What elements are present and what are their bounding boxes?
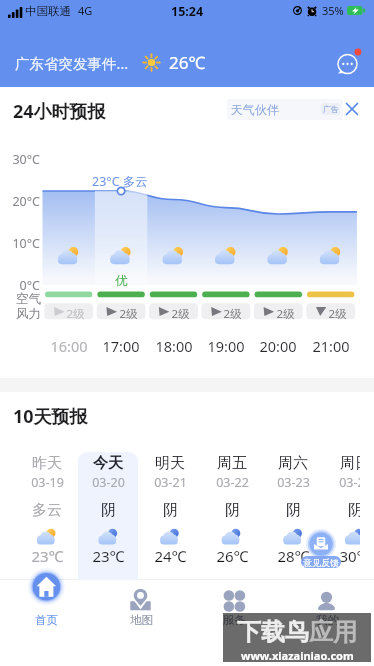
staticText: 23℃: [31, 546, 64, 566]
staticText: 今天: [93, 454, 123, 473]
staticText: 多云: [32, 501, 62, 520]
staticText: 19:00: [207, 336, 245, 356]
staticText: 阴: [286, 501, 301, 520]
staticText: 28℃: [277, 546, 310, 566]
button[interactable]: [201, 452, 263, 580]
staticText: 2级: [119, 306, 138, 322]
staticText: 18:00: [155, 336, 193, 356]
staticText: 地图: [130, 613, 153, 627]
button[interactable]: 24小时预报: [13, 99, 106, 124]
staticText: www.xiazainiao.com: [241, 648, 354, 662]
button[interactable]: [78, 452, 140, 580]
staticText: 2级: [328, 306, 347, 322]
staticText: 应用: [309, 617, 357, 647]
staticText: 16:00: [50, 336, 88, 356]
staticText: 24小时预报: [13, 99, 106, 124]
staticText: 明天: [155, 454, 185, 473]
staticText: 30°C: [12, 151, 40, 168]
staticText: 03-24: [339, 474, 360, 491]
button[interactable]: [324, 452, 360, 580]
button[interactable]: [281, 580, 374, 666]
button[interactable]: Close ad: [344, 101, 360, 117]
staticText: 26℃: [169, 51, 206, 74]
staticText: 周五: [217, 454, 247, 473]
staticText: 03-21: [154, 474, 187, 491]
button[interactable]: [94, 580, 188, 666]
staticText: 35%: [322, 3, 344, 18]
staticText: 阴: [101, 501, 116, 520]
staticText: 24℃: [154, 546, 187, 566]
button[interactable]: Feedback: [303, 526, 339, 562]
button[interactable]: [262, 452, 324, 580]
staticText: 广告: [323, 104, 339, 114]
button[interactable]: Messages: [334, 49, 361, 76]
staticText: 21:00: [312, 336, 350, 356]
staticText: 20:00: [259, 336, 297, 356]
staticText: 0°C: [19, 277, 40, 294]
staticText: 30℃: [339, 546, 360, 566]
staticText: 下载鸟: [237, 617, 309, 647]
staticText: 2级: [171, 306, 190, 322]
staticText: 首页: [35, 613, 58, 627]
staticText: 昨天: [32, 454, 62, 473]
staticText: 03-19: [31, 474, 64, 491]
staticText: 优: [115, 273, 128, 289]
button[interactable]: 天气伙伴: [227, 99, 343, 120]
staticText: 天气伙伴: [231, 102, 279, 117]
button[interactable]: 广东省突发事件...: [15, 53, 129, 73]
staticText: 2级: [66, 306, 85, 322]
button[interactable]: [16, 452, 78, 580]
button[interactable]: 10天预报: [13, 404, 88, 429]
staticText: 空气: [16, 291, 41, 307]
staticText: 10°C: [12, 235, 40, 252]
staticText: 20°C: [12, 193, 40, 210]
staticText: 阴: [163, 501, 178, 520]
staticText: 03-23: [277, 474, 310, 491]
staticText: 17:00: [102, 336, 140, 356]
staticText: 26℃: [216, 546, 249, 566]
button[interactable]: [187, 580, 281, 666]
staticText: 03-22: [216, 474, 249, 491]
staticText: 23°C 多云: [92, 173, 148, 190]
button[interactable]: [0, 580, 94, 666]
staticText: 阴: [225, 501, 240, 520]
staticText: 我的: [316, 613, 339, 627]
staticText: 服务: [223, 613, 246, 627]
staticText: 风力: [16, 306, 41, 322]
staticText: 意见反馈: [303, 557, 339, 568]
staticText: 15:24: [171, 3, 204, 20]
staticText: 10天预报: [13, 404, 88, 429]
staticText: 2级: [223, 306, 242, 322]
staticText: 广东省突发事件...: [15, 53, 129, 73]
staticText: 阴: [348, 501, 360, 520]
staticText: 2级: [276, 306, 295, 322]
staticText: 周六: [278, 454, 308, 473]
staticText: 4G: [78, 3, 93, 18]
button[interactable]: [139, 452, 201, 580]
staticText: 03-20: [92, 474, 125, 491]
staticText: 中国联通: [25, 4, 71, 18]
button[interactable]: 意见反馈: [301, 556, 341, 568]
staticText: 周日: [340, 454, 360, 473]
staticText: 23℃: [92, 546, 125, 566]
